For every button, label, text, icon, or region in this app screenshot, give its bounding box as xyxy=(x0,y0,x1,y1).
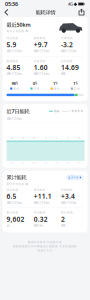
staticText: +9.7 xyxy=(34,40,48,49)
staticText: 5.9 xyxy=(44,137,46,139)
staticText: km xyxy=(6,224,9,227)
staticText: 5.7 xyxy=(67,137,69,139)
staticText: kWh/100km xyxy=(6,72,21,76)
staticText: 驱动电耗 xyxy=(34,188,46,191)
staticText: 平均能耗 xyxy=(34,211,46,214)
staticText: 最近50km xyxy=(6,21,30,28)
staticText: 4G xyxy=(68,1,73,7)
staticText: 累计用电 xyxy=(61,211,73,214)
staticText: 一年内平均 xyxy=(68,109,83,113)
staticText: +11.1 xyxy=(34,192,52,201)
staticText: 空调电耗 xyxy=(61,188,73,191)
staticText: kWh/100km xyxy=(34,201,49,205)
staticText: 2 xyxy=(61,215,65,224)
staticText: % xyxy=(55,82,57,85)
staticText: 08.30 xyxy=(55,162,59,164)
staticText: 总用电量 xyxy=(61,59,73,63)
staticText: 6.2 xyxy=(11,137,13,139)
staticText: 98 xyxy=(11,81,15,86)
staticText: 0 xyxy=(33,81,35,86)
staticText: 5.9 xyxy=(78,137,80,139)
staticText: 08.29 xyxy=(43,162,47,164)
button[interactable]: Back xyxy=(4,8,13,16)
staticText: kWh/100km xyxy=(6,117,21,121)
staticText: 1 xyxy=(73,81,75,86)
staticText: 累计能耗 xyxy=(6,174,26,181)
staticText: kWh/km xyxy=(34,224,43,227)
staticText: 能耗详情 xyxy=(35,9,55,16)
staticText: % xyxy=(75,82,77,85)
staticText: 08.27 xyxy=(21,162,25,164)
staticText: 0.32 xyxy=(34,215,48,224)
staticText: 每百公里电耗 xyxy=(6,29,24,33)
staticText: -3.2 xyxy=(61,40,73,49)
staticText: 1.60 xyxy=(34,63,48,72)
staticText: 驱动电耗 xyxy=(34,36,46,40)
staticText: 4.85 xyxy=(6,63,20,72)
staticText: 14.69 xyxy=(61,63,79,72)
staticText: kWh/100km xyxy=(61,201,76,205)
staticText: 近7日能耗 xyxy=(6,108,29,115)
staticText: kWh/100km xyxy=(34,49,49,53)
staticText: 6.5 xyxy=(6,192,16,201)
staticText: 9,602 xyxy=(6,215,24,224)
staticText: 附件 xyxy=(54,87,60,90)
staticText: 驱动 xyxy=(13,87,19,90)
staticText: 6.0 xyxy=(33,137,35,139)
staticText: 累计里程 xyxy=(6,211,18,214)
staticText: % xyxy=(35,82,37,85)
staticText: 1 xyxy=(53,81,55,86)
staticText: 空调电耗 xyxy=(61,36,73,40)
button[interactable]: 近3个月 xyxy=(66,175,83,180)
staticText: 5.9 xyxy=(6,40,16,49)
staticText: 空调 xyxy=(33,87,39,90)
staticText: 行驶里程 xyxy=(34,59,46,63)
staticText: kWh xyxy=(61,72,66,76)
staticText: % xyxy=(16,82,18,85)
staticText: 电耗 xyxy=(54,109,60,113)
staticText: 累计平均电耗 xyxy=(6,182,24,186)
staticText: 数据仅供参考 以实际为准 xyxy=(28,240,62,244)
button[interactable]: Share xyxy=(78,8,86,17)
staticText: kWh/100km xyxy=(6,201,21,205)
staticText: 综合电耗 xyxy=(6,36,18,40)
staticText: 08.31 xyxy=(66,162,70,164)
staticText: +3.4 xyxy=(61,192,75,201)
staticText: 更新于今日 xyxy=(37,249,52,252)
staticText: 09.01 xyxy=(77,162,81,164)
staticText: kWh/100km xyxy=(6,49,21,53)
staticText: 6.1 xyxy=(56,137,58,139)
staticText: 能耗数据统计自车辆最近行驶数据 不含充电损耗 xyxy=(13,245,77,248)
staticText: 08.28 xyxy=(32,162,36,164)
staticText: kWh/100km xyxy=(61,49,76,53)
staticText: 综合电耗 xyxy=(6,188,18,191)
staticText: 5.8 xyxy=(22,137,24,139)
staticText: kWh/100km xyxy=(34,72,49,76)
staticText: 电池能耗 xyxy=(6,59,18,63)
staticText: 近3个月 xyxy=(68,176,79,179)
staticText: 08.26 xyxy=(10,162,14,164)
staticText: 其他 xyxy=(74,87,80,90)
staticText: 05:36 xyxy=(5,0,18,8)
staticText: kWh xyxy=(61,224,66,227)
